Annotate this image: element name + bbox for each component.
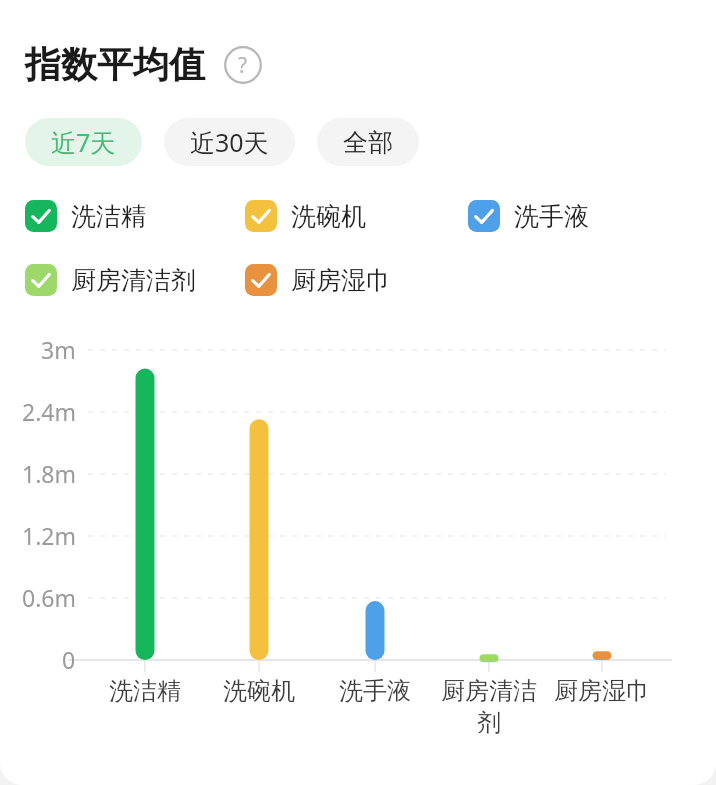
- button[interactable]: 厨房湿巾: [245, 264, 468, 296]
- staticText: 近30天: [190, 125, 269, 159]
- staticText: 洗手液: [339, 676, 411, 706]
- staticText: 洗洁精: [109, 676, 181, 706]
- button[interactable]: 洗手液: [468, 200, 668, 232]
- staticText: 洗洁精: [71, 201, 146, 232]
- staticText: 3m: [41, 334, 76, 365]
- button[interactable]: 近7天: [25, 118, 142, 166]
- button[interactable]: 洗洁精: [25, 200, 245, 232]
- staticText: 1.8m: [22, 458, 76, 489]
- button[interactable]: 近30天: [164, 118, 295, 166]
- staticText: 厨房清洁剂: [71, 265, 196, 296]
- button[interactable]: 洗碗机: [245, 200, 468, 232]
- button[interactable]: Help: [223, 45, 263, 85]
- staticText: 洗碗机: [291, 201, 366, 232]
- staticText: ?: [238, 51, 248, 80]
- staticText: 全部: [343, 127, 393, 158]
- staticText: 指数平均值: [25, 42, 205, 87]
- staticText: 厨房清洁剂: [432, 676, 546, 738]
- staticText: 0: [62, 644, 76, 675]
- staticText: 0.6m: [22, 582, 76, 613]
- staticText: 1.2m: [22, 520, 76, 551]
- staticText: 2.4m: [22, 396, 76, 427]
- staticText: 厨房湿巾: [291, 265, 391, 296]
- staticText: 洗碗机: [223, 676, 295, 706]
- staticText: 厨房湿巾: [554, 676, 650, 706]
- button[interactable]: 全部: [317, 118, 419, 166]
- staticText: 洗手液: [514, 201, 589, 232]
- staticText: 近7天: [51, 125, 116, 159]
- button[interactable]: 厨房清洁剂: [25, 264, 245, 296]
